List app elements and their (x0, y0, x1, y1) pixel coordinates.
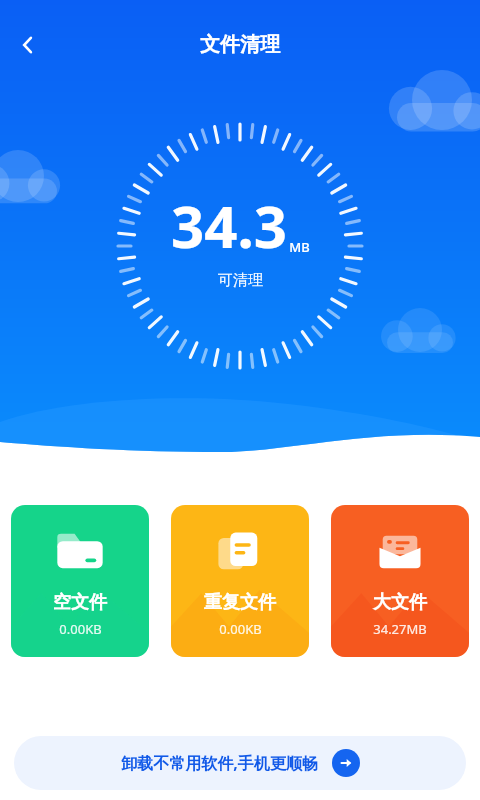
staticText: 重复文件 (204, 591, 276, 614)
staticText: 大文件 (373, 591, 427, 614)
button[interactable]: Back (4, 21, 52, 69)
staticText: MB (289, 238, 310, 256)
button[interactable]: 大文件 (331, 505, 469, 657)
staticText: 34.27MB (373, 620, 427, 638)
staticText: 34.3 (171, 186, 287, 265)
button[interactable]: 卸载不常用软件,手机更顺畅 (14, 736, 466, 790)
staticText: 0.00KB (59, 620, 102, 638)
button[interactable]: 重复文件 (171, 505, 309, 657)
staticText: 空文件 (53, 591, 107, 614)
staticText: 文件清理 (200, 32, 280, 57)
staticText: 卸载不常用软件,手机更顺畅 (121, 752, 318, 774)
staticText: 0.00KB (219, 620, 262, 638)
staticText: 可清理 (218, 271, 263, 290)
button[interactable]: 空文件 (11, 505, 149, 657)
